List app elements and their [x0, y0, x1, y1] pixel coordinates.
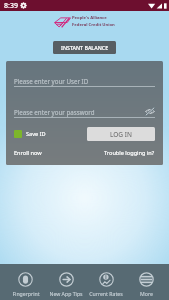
- other: Show password: [145, 107, 155, 116]
- staticText: Federal Credit Union: [72, 22, 115, 28]
- button[interactable]: Enroll now: [14, 149, 42, 157]
- staticText: Please enter your User ID: [14, 77, 89, 85]
- button[interactable]: New App Tips: [46, 268, 86, 297]
- staticText: Fingerprint: [12, 290, 40, 297]
- button[interactable]: Save ID: [14, 130, 46, 138]
- staticText: People's Alliance: [72, 15, 107, 21]
- button[interactable]: INSTANT BALANCE: [53, 41, 116, 54]
- button[interactable]: LOG IN: [87, 127, 155, 141]
- staticText: 8:39: [4, 1, 18, 11]
- staticText: LOG IN: [110, 130, 132, 139]
- button[interactable]: Current Rates: [86, 268, 126, 297]
- staticText: New App Tips: [49, 290, 83, 297]
- button[interactable]: Trouble logging in?: [104, 149, 155, 157]
- staticText: Current Rates: [89, 290, 123, 297]
- staticText: INSTANT BALANCE: [61, 44, 109, 51]
- staticText: More: [140, 290, 153, 297]
- staticText: Save ID: [26, 130, 46, 138]
- button[interactable]: Fingerprint: [5, 268, 46, 297]
- staticText: Please enter your password: [14, 108, 95, 116]
- button[interactable]: More: [126, 268, 166, 297]
